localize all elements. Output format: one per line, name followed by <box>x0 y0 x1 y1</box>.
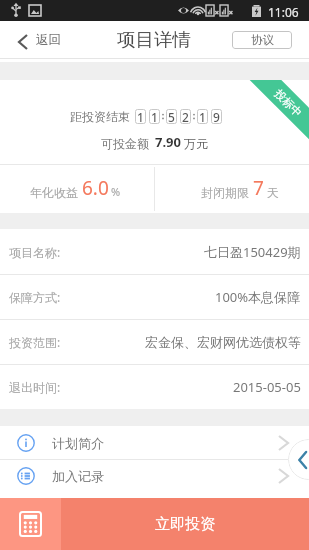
staticText: 9 <box>213 109 220 124</box>
staticText: 宏金保、宏财网优选债权等 <box>145 334 301 350</box>
button[interactable]: 退出时间: <box>0 364 309 409</box>
staticText: 计划简介 <box>52 435 104 451</box>
staticText: 2 <box>182 109 189 124</box>
staticText: 年化收益 <box>30 185 78 200</box>
button[interactable]: 协议 <box>232 31 292 49</box>
button[interactable]: 计划简介 <box>0 426 309 459</box>
staticText: 6.0 <box>82 175 109 201</box>
staticText: 立即投资 <box>155 515 215 534</box>
staticText: 7.90 <box>155 133 181 151</box>
staticText: 11:06 <box>268 4 299 20</box>
staticText: 退出时间: <box>9 379 61 395</box>
button[interactable]: Back <box>288 439 309 480</box>
button[interactable]: 加入记录 <box>0 459 309 493</box>
button[interactable]: Calculator <box>0 498 61 550</box>
staticText: 1 <box>199 109 206 124</box>
staticText: 1 <box>151 109 158 124</box>
button[interactable]: 返回 <box>0 28 71 52</box>
staticText: 7 <box>253 175 264 201</box>
staticText: 1 <box>137 109 144 124</box>
staticText: 封闭期限 <box>201 185 249 200</box>
staticText: 距投资结束 <box>70 109 130 124</box>
staticText: 返回 <box>36 32 61 48</box>
button[interactable]: 立即投资 <box>61 498 309 550</box>
staticText: 100%本息保障 <box>215 288 301 306</box>
button[interactable]: 项目名称: <box>0 229 309 274</box>
button[interactable]: 投资范围: <box>0 319 309 364</box>
staticText: 项目名称: <box>9 244 61 260</box>
staticText: 投标中 <box>272 86 305 120</box>
staticText: 天 <box>267 185 279 200</box>
staticText: 保障方式: <box>9 289 61 305</box>
staticText: 七日盈150429期 <box>204 243 301 261</box>
staticText: 2015-05-05 <box>233 378 301 396</box>
button[interactable]: 保障方式: <box>0 274 309 319</box>
staticText: 协议 <box>251 33 274 47</box>
staticText: 5 <box>168 109 175 124</box>
staticText: 加入记录 <box>52 468 104 484</box>
staticText: 可投金额 <box>101 136 149 151</box>
staticText: 项目详情 <box>117 28 191 51</box>
staticText: 投资范围: <box>9 334 61 350</box>
staticText: 万元 <box>184 136 208 151</box>
staticText: % <box>111 184 121 199</box>
